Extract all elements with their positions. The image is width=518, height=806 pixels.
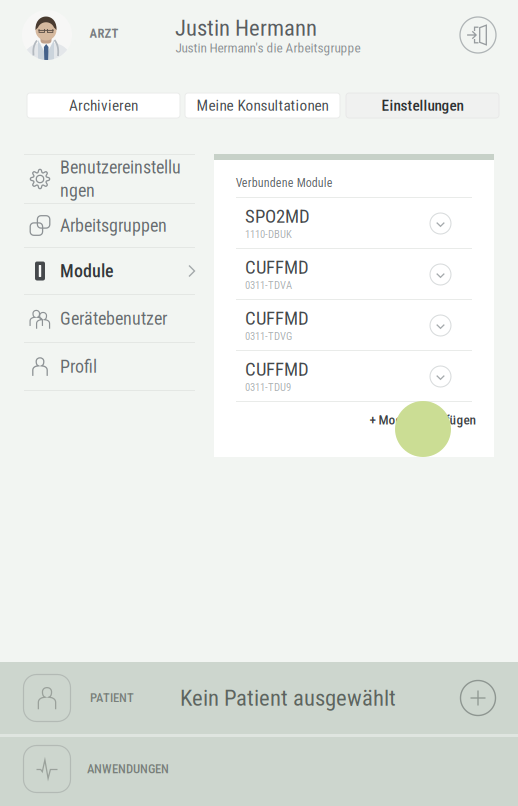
button[interactable]: Einstellungen — [346, 93, 499, 118]
staticText: Kein Patient ausgewählt — [180, 685, 396, 711]
staticText: Justin Hermann — [175, 15, 317, 41]
staticText: Module — [60, 260, 114, 282]
staticText: Benutzereinstellu — [60, 157, 181, 178]
staticText: ngen — [60, 180, 95, 201]
button[interactable]: ANWENDUNGEN — [0, 737, 518, 806]
staticText: Arbeitsgruppen — [60, 215, 167, 236]
staticText: Einstellungen — [381, 96, 463, 114]
button[interactable]: Meine Konsultationen — [185, 93, 340, 118]
staticText: Meine Konsultationen — [196, 96, 328, 114]
button[interactable]: CUFFMD — [214, 249, 494, 300]
button[interactable]: CUFFMD — [214, 300, 494, 351]
button[interactable]: SPO2MD — [214, 198, 494, 249]
staticText: CUFFMD — [245, 307, 309, 329]
staticText: 0311-TDVA — [245, 279, 292, 292]
staticText: Gerätebenutzer — [60, 308, 167, 329]
button[interactable]: Module — [0, 248, 205, 294]
staticText: 1110-DBUK — [245, 228, 292, 241]
staticText: SPO2MD — [245, 205, 310, 227]
button[interactable]: Archivieren — [27, 93, 180, 118]
staticText: + Modul hinzufügen — [369, 412, 476, 428]
button[interactable]: Benutzereinstellu — [0, 155, 205, 203]
button[interactable]: + Modul hinzufügen — [214, 401, 494, 457]
button[interactable]: PATIENT — [0, 662, 518, 734]
button[interactable]: Abmelden — [458, 15, 498, 55]
button[interactable]: Arbeitsgruppen — [0, 204, 205, 247]
staticText: ANWENDUNGEN — [87, 762, 169, 776]
staticText: CUFFMD — [245, 256, 309, 278]
staticText: 0311-TDVG — [245, 330, 292, 343]
staticText: PATIENT — [90, 691, 134, 705]
staticText: ARZT — [89, 26, 118, 41]
staticText: Justin Hermann's die Arbeitsgruppe — [175, 40, 360, 56]
button[interactable]: Profil — [0, 343, 205, 390]
staticText: Verbundene Module — [236, 176, 333, 190]
staticText: Profil — [60, 356, 97, 377]
button[interactable]: CUFFMD — [214, 351, 494, 402]
staticText: Archivieren — [69, 96, 138, 114]
staticText: 0311-TDU9 — [245, 381, 291, 394]
staticText: CUFFMD — [245, 358, 309, 380]
button[interactable]: Gerätebenutzer — [0, 295, 205, 342]
